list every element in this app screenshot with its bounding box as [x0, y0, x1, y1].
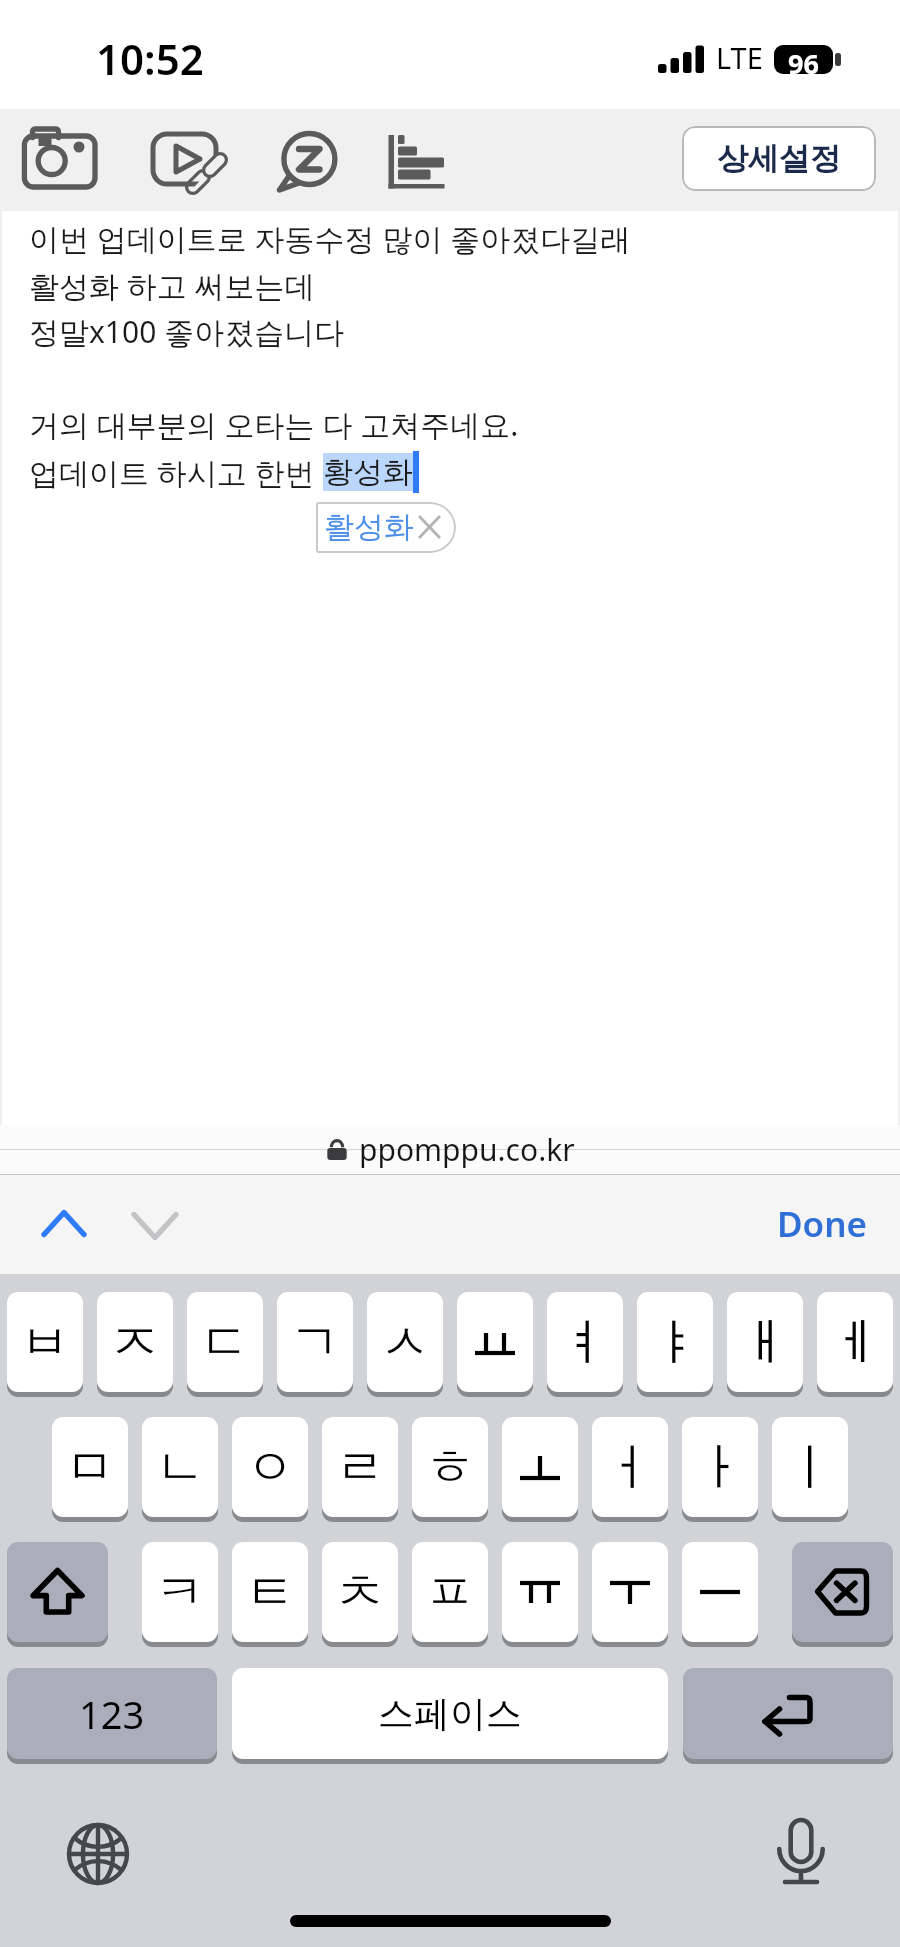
staticText: ㄴ: [155, 1436, 205, 1499]
button[interactable]: ㅌ: [232, 1542, 308, 1642]
staticText: 이번 업데이트로 자동수정 많이 좋아졌다길래: [29, 218, 631, 259]
staticText: ㅅ: [380, 1311, 430, 1374]
button[interactable]: 상세설정: [682, 126, 876, 191]
button[interactable]: 123: [7, 1668, 217, 1759]
staticText: ㅂ: [20, 1311, 70, 1374]
staticText: ㅈ: [110, 1311, 160, 1374]
button[interactable]: [592, 1542, 668, 1642]
staticText: 활성화 하고 써보는데: [29, 265, 315, 306]
button[interactable]: Backspace: [792, 1542, 893, 1642]
button[interactable]: Change keyboard: [64, 1820, 132, 1888]
staticText: 활성화: [324, 508, 414, 546]
staticText: ㅇ: [245, 1436, 295, 1499]
button[interactable]: Next field: [125, 1200, 185, 1250]
button[interactable]: ㅣ: [772, 1417, 848, 1517]
staticText: ㅔ: [830, 1311, 880, 1374]
button[interactable]: Return: [683, 1668, 893, 1759]
staticText: 123: [79, 1688, 145, 1740]
button[interactable]: ㅁ: [52, 1417, 128, 1517]
button[interactable]: ㅇ: [232, 1417, 308, 1517]
staticText: ㅓ: [605, 1436, 655, 1499]
button[interactable]: ㅈ: [97, 1292, 173, 1392]
button[interactable]: Shift: [7, 1542, 108, 1642]
button[interactable]: ㅊ: [322, 1542, 398, 1642]
button[interactable]: ㅎ: [412, 1417, 488, 1517]
button[interactable]: [502, 1417, 578, 1517]
button[interactable]: ㅅ: [367, 1292, 443, 1392]
button[interactable]: Dictation: [767, 1812, 835, 1880]
button[interactable]: Done: [772, 1200, 872, 1248]
button[interactable]: ㅋ: [142, 1542, 218, 1642]
staticText: 96: [788, 45, 819, 74]
button[interactable]: ㅂ: [7, 1292, 83, 1392]
staticText: ㅎ: [425, 1436, 475, 1499]
button[interactable]: ㅓ: [592, 1417, 668, 1517]
button[interactable]: ㅕ: [547, 1292, 623, 1392]
button[interactable]: [457, 1292, 533, 1392]
staticText: ㅕ: [560, 1311, 610, 1374]
staticText: 10:52: [96, 30, 204, 87]
button[interactable]: ㅍ: [412, 1542, 488, 1642]
button[interactable]: [682, 1542, 758, 1642]
staticText: ㅊ: [335, 1561, 385, 1624]
button[interactable]: Camera: [10, 118, 110, 200]
staticText: Done: [777, 1200, 868, 1248]
staticText: ㅍ: [425, 1561, 475, 1624]
button[interactable]: 스페이스: [232, 1668, 668, 1759]
staticText: ppomppu.co.kr: [359, 1129, 575, 1170]
staticText: 황성화: [323, 453, 413, 491]
staticText: ㅐ: [740, 1311, 790, 1374]
button[interactable]: [502, 1542, 578, 1642]
button[interactable]: 활성화: [316, 502, 456, 553]
staticText: ㄷ: [200, 1311, 250, 1374]
button[interactable]: ㄹ: [322, 1417, 398, 1517]
staticText: ㅋ: [155, 1561, 205, 1624]
staticText: ㄱ: [290, 1311, 340, 1374]
staticText: ㅑ: [650, 1311, 700, 1374]
button[interactable]: ㅔ: [817, 1292, 893, 1392]
staticText: ㅏ: [695, 1436, 745, 1499]
button[interactable]: Poll: [375, 118, 465, 200]
button[interactable]: ㅏ: [682, 1417, 758, 1517]
button[interactable]: ㅑ: [637, 1292, 713, 1392]
staticText: 정말x100 좋아졌습니다: [29, 311, 345, 352]
staticText: ㄹ: [335, 1436, 385, 1499]
staticText: 상세설정: [717, 139, 841, 178]
button[interactable]: ㄱ: [277, 1292, 353, 1392]
button[interactable]: ppomppu.co.kr: [0, 1125, 900, 1174]
button[interactable]: Video link: [140, 118, 250, 200]
button[interactable]: ㅐ: [727, 1292, 803, 1392]
button[interactable]: Chat: [260, 118, 360, 200]
staticText: ㅌ: [245, 1561, 295, 1624]
staticText: ㅣ: [785, 1436, 835, 1499]
staticText: ㅁ: [65, 1436, 115, 1499]
button[interactable]: ㄷ: [187, 1292, 263, 1392]
staticText: 스페이스: [378, 1691, 522, 1736]
button[interactable]: ㄴ: [142, 1417, 218, 1517]
button[interactable]: Previous field: [34, 1200, 94, 1250]
staticText: 업데이트 하시고 한번: [29, 452, 323, 493]
staticText: 거의 대부분의 오타는 다 고쳐주네요.: [29, 404, 519, 445]
staticText: LTE: [716, 38, 763, 77]
